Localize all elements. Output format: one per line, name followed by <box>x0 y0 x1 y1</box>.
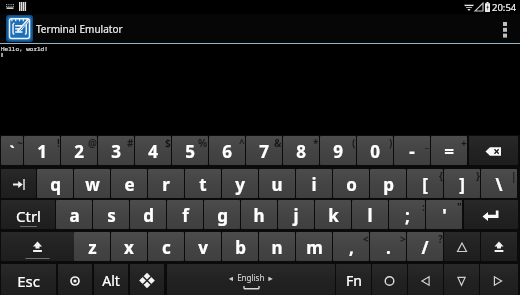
button[interactable]: y <box>222 169 258 198</box>
staticText: % <box>198 136 208 150</box>
button[interactable]: q <box>37 169 73 198</box>
button[interactable]: Shift <box>481 232 517 261</box>
staticText: @ <box>88 136 97 150</box>
button[interactable]: o <box>333 169 369 198</box>
button[interactable]: Enter <box>464 200 518 229</box>
button[interactable]: 5 <box>172 136 208 165</box>
button[interactable]: 1 <box>24 136 60 165</box>
button[interactable]: ] <box>444 169 480 198</box>
button[interactable]: a <box>56 200 92 229</box>
button[interactable]: w <box>74 169 110 198</box>
button[interactable]: \ <box>481 169 517 198</box>
staticText: k <box>328 204 339 227</box>
button[interactable]: r <box>148 169 184 198</box>
staticText: z <box>88 236 97 259</box>
staticText: Esc <box>17 271 40 291</box>
button[interactable]: [ <box>407 169 443 198</box>
button[interactable]: j <box>278 200 314 229</box>
button[interactable]: Ctrl <box>1 200 55 229</box>
button[interactable]: Symbols <box>130 264 164 295</box>
button[interactable]: t <box>185 169 221 198</box>
button[interactable]: Backspace <box>469 136 518 165</box>
staticText: u <box>271 173 283 196</box>
staticText: d <box>143 204 154 227</box>
staticText: 8 <box>296 140 306 163</box>
staticText: n <box>271 236 283 259</box>
button[interactable]: u <box>259 169 295 198</box>
button[interactable]: z <box>74 232 110 261</box>
button[interactable]: i <box>296 169 332 198</box>
button[interactable]: 9 <box>320 136 356 165</box>
staticText: , <box>349 236 354 259</box>
staticText: Hello, world! <box>1 45 48 53</box>
button[interactable]: Home <box>372 264 407 295</box>
staticText: } <box>476 169 480 183</box>
button[interactable]: 0 <box>357 136 393 165</box>
staticText: ( <box>352 136 356 150</box>
button[interactable]: c <box>148 232 184 261</box>
button[interactable]: l <box>352 200 388 229</box>
button[interactable]: 7 <box>246 136 282 165</box>
staticText: ' <box>442 204 447 227</box>
staticText: 5 <box>185 140 195 163</box>
button[interactable]: Fn <box>336 264 371 295</box>
button[interactable]: b <box>222 232 258 261</box>
staticText: j <box>293 204 299 227</box>
staticText: # <box>127 136 134 150</box>
button[interactable]: = <box>431 136 467 165</box>
staticText: | <box>511 169 517 183</box>
button[interactable]: p <box>370 169 406 198</box>
staticText: ) <box>389 136 393 150</box>
staticText: - <box>409 140 415 163</box>
staticText: + <box>461 136 467 150</box>
staticText: : <box>422 200 425 214</box>
button[interactable]: , <box>333 232 369 261</box>
staticText: r <box>162 173 170 196</box>
button[interactable]: n <box>259 232 295 261</box>
staticText: e <box>124 173 135 196</box>
staticText: . <box>386 236 391 259</box>
button[interactable]: 2 <box>61 136 97 165</box>
staticText: v <box>198 236 208 259</box>
button[interactable]: 6 <box>209 136 245 165</box>
button[interactable]: s <box>93 200 129 229</box>
staticText: Alt <box>102 271 120 290</box>
button[interactable]: v <box>185 232 221 261</box>
button[interactable]: Forward <box>480 264 518 295</box>
staticText: ] <box>459 173 465 196</box>
button[interactable]: Down <box>444 264 479 295</box>
button[interactable]: More options <box>490 14 520 43</box>
button[interactable]: g <box>204 200 240 229</box>
button[interactable]: 8 <box>283 136 319 165</box>
staticText: 4 <box>148 140 158 163</box>
button[interactable]: ◂ English ▸ <box>167 264 335 295</box>
button[interactable]: x <box>111 232 147 261</box>
button[interactable]: 4 <box>135 136 171 165</box>
button[interactable]: Shift <box>1 232 74 261</box>
button[interactable]: ' <box>426 200 462 229</box>
button[interactable]: - <box>394 136 430 165</box>
button[interactable]: k <box>315 200 351 229</box>
button[interactable]: Settings <box>58 264 92 295</box>
button[interactable]: / <box>407 232 443 261</box>
button[interactable]: d <box>130 200 166 229</box>
staticText: b <box>235 236 246 259</box>
button[interactable]: Esc <box>1 264 56 295</box>
button[interactable]: Alt <box>94 264 128 295</box>
button[interactable]: ; <box>389 200 425 229</box>
button[interactable]: Tab <box>1 169 36 198</box>
staticText: ~ <box>17 136 23 150</box>
staticText: s <box>107 204 116 227</box>
button[interactable]: m <box>296 232 332 261</box>
button[interactable]: Back <box>408 264 443 295</box>
button[interactable]: e <box>111 169 147 198</box>
button[interactable]: h <box>241 200 277 229</box>
button[interactable]: . <box>370 232 406 261</box>
button[interactable]: 3 <box>98 136 134 165</box>
button[interactable]: Up <box>444 232 480 261</box>
staticText: " <box>457 200 462 214</box>
staticText: ! <box>57 136 60 150</box>
button[interactable]: f <box>167 200 203 229</box>
staticText: 20:54 <box>492 1 517 14</box>
button[interactable]: ` <box>1 136 23 165</box>
